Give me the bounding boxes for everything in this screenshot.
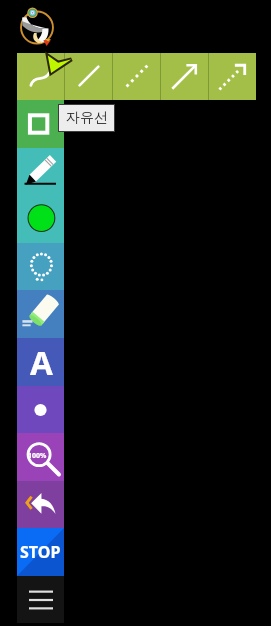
button[interactable]: Shape [17, 100, 64, 148]
staticText: A [30, 340, 53, 385]
button[interactable]: Dashed arrow [209, 53, 256, 100]
button[interactable]: Dashed line [113, 53, 160, 100]
staticText: 100% [28, 451, 47, 461]
button[interactable]: Freehand [17, 53, 64, 100]
button[interactable]: STOP [17, 528, 64, 576]
button[interactable]: Eraser [17, 290, 64, 338]
staticText: STOP [20, 541, 61, 563]
button[interactable]: Filled circle [17, 195, 64, 243]
button[interactable]: Arrow [161, 53, 208, 100]
button[interactable]: Lasso select [17, 243, 64, 291]
button[interactable]: Straight line [65, 53, 112, 100]
button[interactable]: Text [17, 338, 64, 386]
button[interactable]: Undo [17, 481, 64, 529]
button[interactable]: Zoom 100% [17, 433, 64, 481]
button[interactable]: Menu [17, 576, 64, 623]
button[interactable]: Pen [17, 148, 64, 196]
other: App logo [16, 4, 58, 46]
button[interactable]: Dot [17, 386, 64, 434]
staticText: 자유선 [66, 109, 108, 127]
